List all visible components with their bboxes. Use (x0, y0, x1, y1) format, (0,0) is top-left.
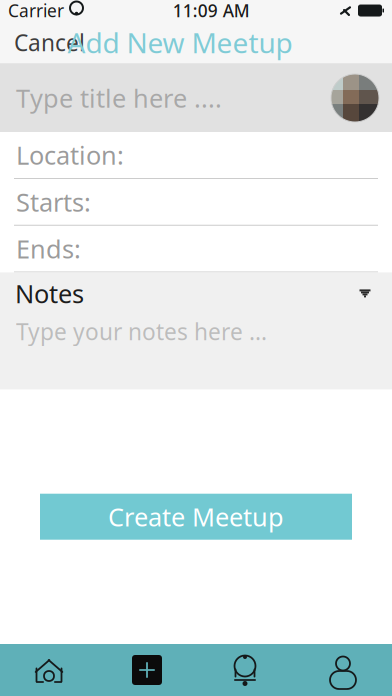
staticText: Notes (15, 277, 84, 310)
staticText: Type your notes here ... (16, 316, 267, 346)
staticText: Create Meetup (108, 500, 284, 533)
button[interactable]: Add (98, 644, 196, 696)
button[interactable]: Cancel (0, 19, 99, 65)
button[interactable]: Profile (294, 644, 392, 696)
button[interactable]: Home (0, 644, 98, 696)
button[interactable]: Expand notes (348, 278, 382, 308)
staticText: 11:09 AM (173, 0, 250, 22)
staticText: Add New Meetup (67, 24, 292, 61)
button[interactable]: Create Meetup (40, 494, 352, 540)
staticText: Carrier (8, 0, 64, 22)
staticText: Type title here .... (16, 81, 222, 115)
staticText: Starts: (16, 185, 91, 219)
staticText: Location: (16, 138, 124, 172)
button[interactable]: Notifications (196, 644, 294, 696)
staticText: Ends: (16, 232, 81, 265)
staticText: Cancel (14, 27, 85, 57)
